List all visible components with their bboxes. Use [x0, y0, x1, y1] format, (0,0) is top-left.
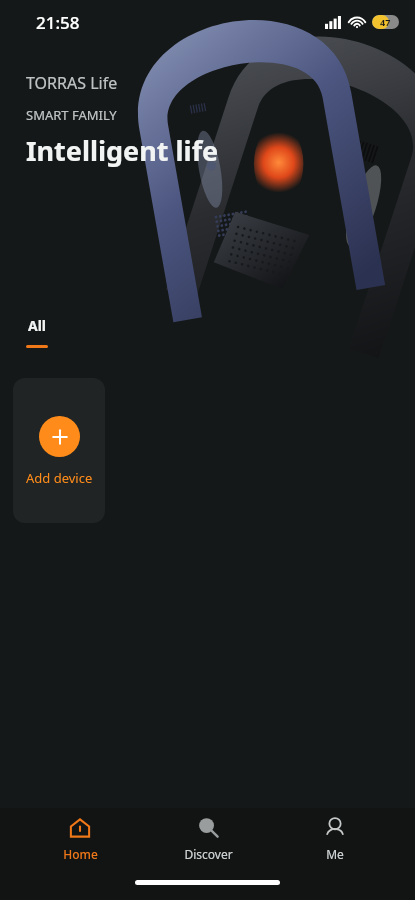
other: Discover: [196, 816, 220, 840]
staticText: TORRAS Life: [26, 72, 118, 94]
other: Me: [323, 816, 347, 840]
staticText: 21:58: [36, 11, 80, 34]
button[interactable]: All: [26, 316, 48, 348]
button[interactable]: Add device: [13, 378, 105, 523]
staticText: Me: [326, 846, 344, 862]
button[interactable]: Discover: [160, 812, 256, 866]
staticText: Discover: [184, 846, 233, 862]
staticText: Add device: [26, 469, 93, 487]
staticText: Home: [63, 846, 98, 862]
other: Home: [68, 816, 92, 840]
button[interactable]: Home: [32, 812, 128, 866]
button[interactable]: Me: [287, 812, 383, 866]
staticText: Intelligent life: [26, 132, 219, 169]
staticText: 47: [380, 16, 391, 28]
staticText: SMART FAMILY: [26, 106, 117, 124]
staticText: All: [28, 316, 47, 335]
